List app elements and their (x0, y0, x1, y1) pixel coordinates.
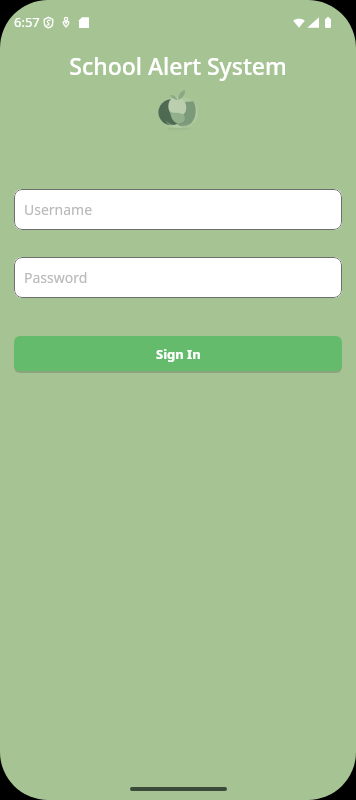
staticText: Sign In (156, 345, 201, 363)
button[interactable]: Password (14, 257, 342, 298)
button[interactable]: Sign In (14, 336, 342, 371)
staticText: 6:57 (14, 13, 40, 31)
button[interactable]: Username (14, 189, 342, 230)
staticText: Username (24, 200, 93, 219)
staticText: School Alert System (0, 50, 356, 81)
staticText: Password (24, 268, 88, 287)
